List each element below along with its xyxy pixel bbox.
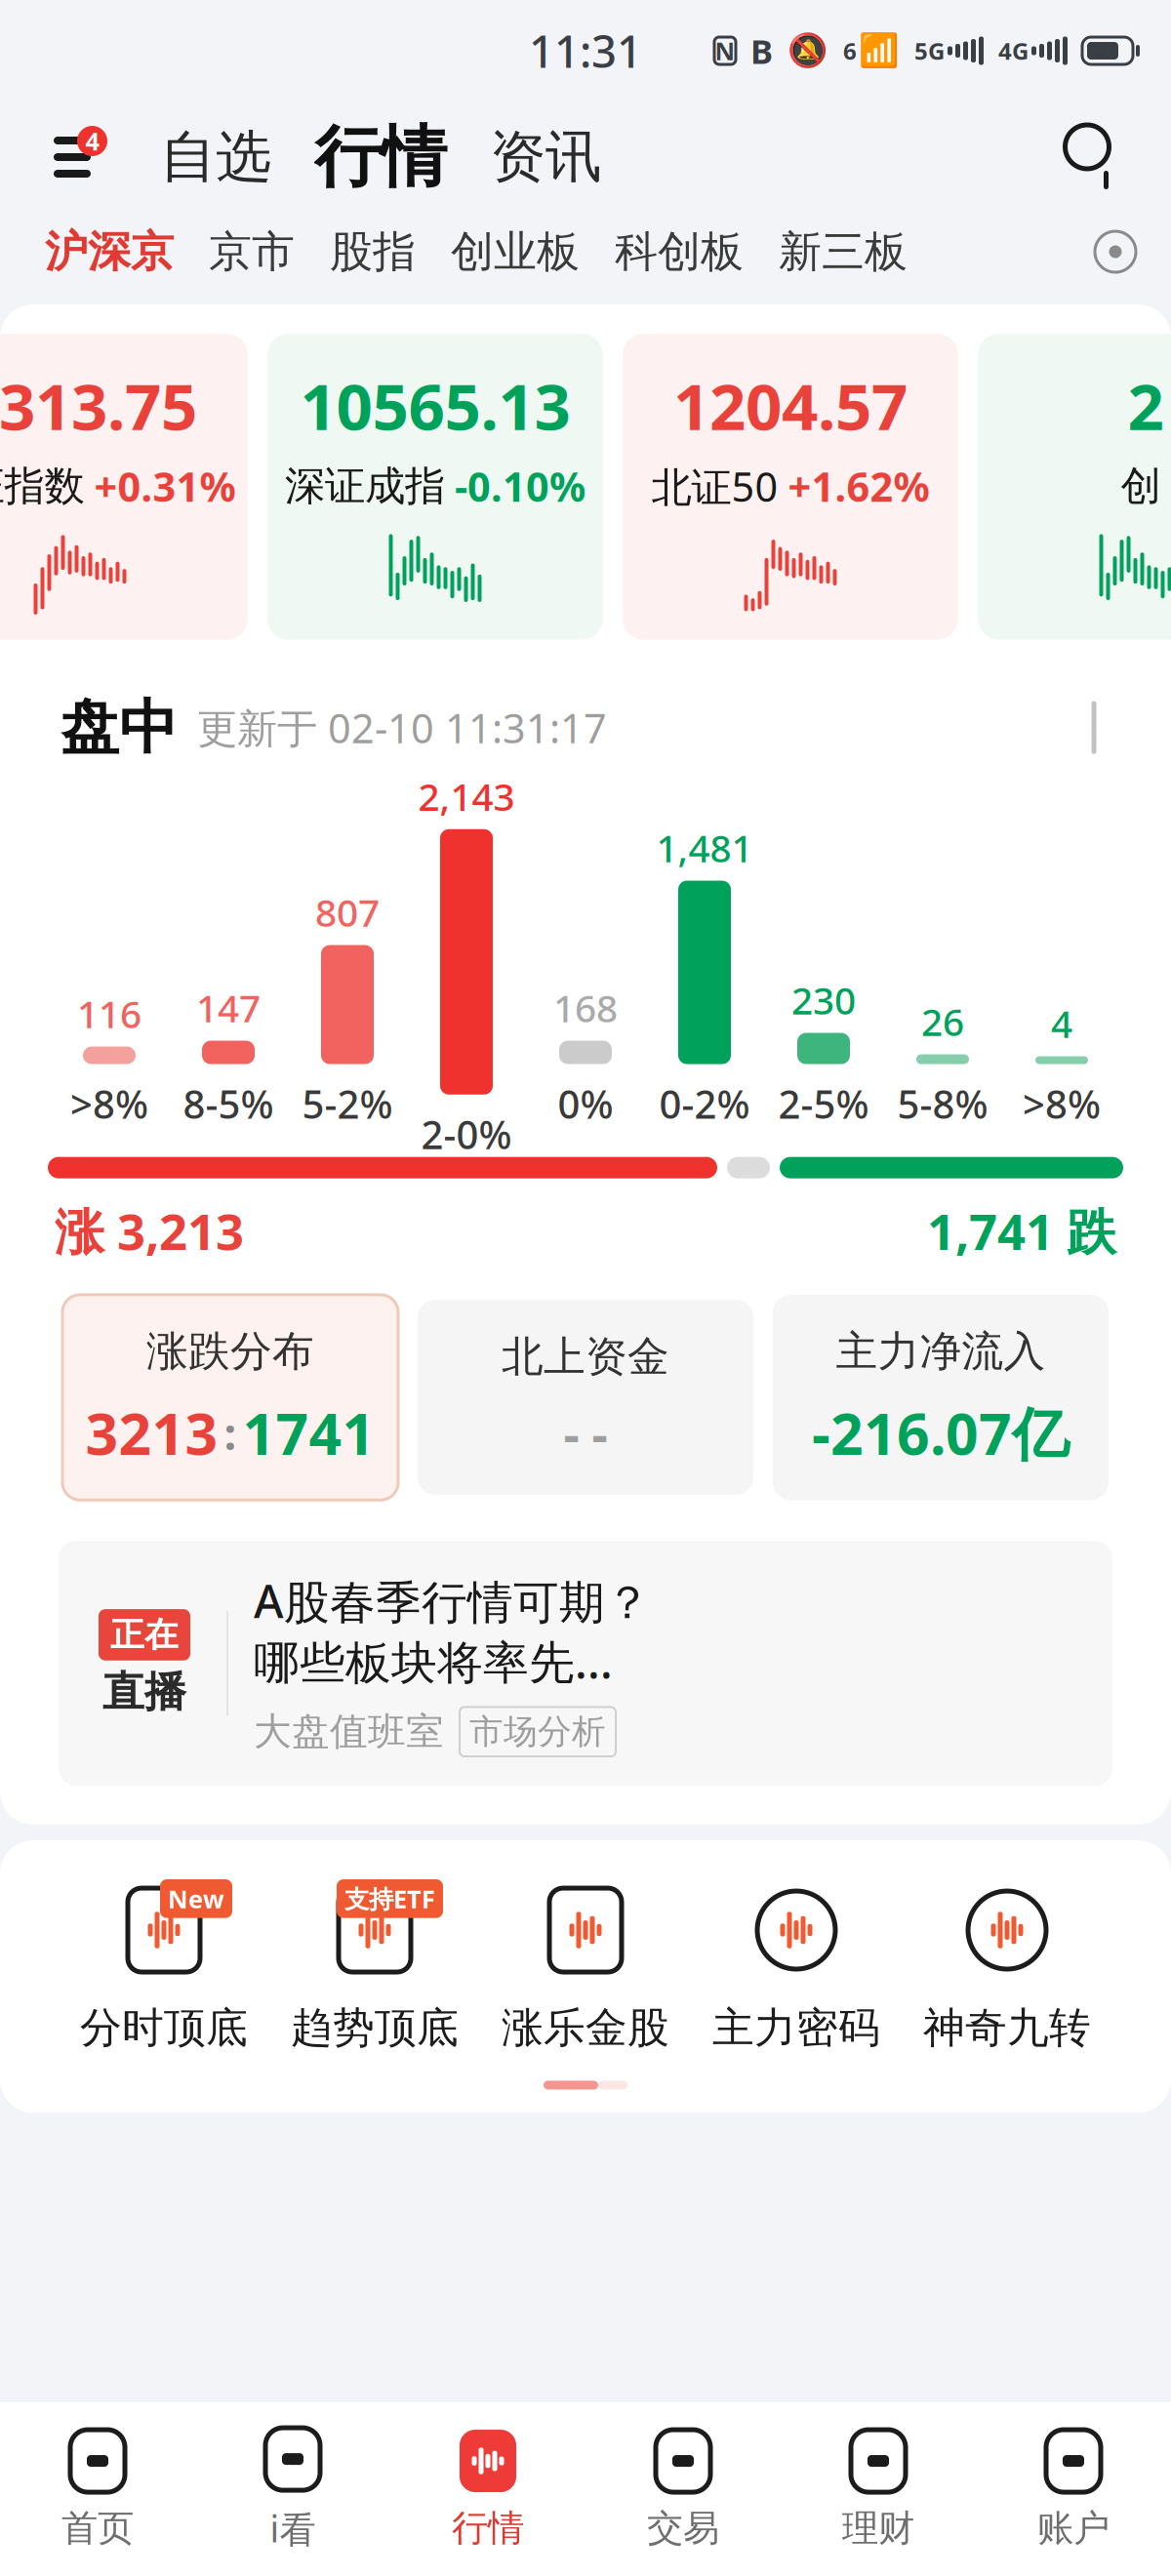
button[interactable]: 股指	[330, 225, 451, 278]
staticText: 807	[315, 887, 380, 937]
staticText: 交易	[647, 2506, 719, 2551]
button[interactable]: 支持ETF	[269, 1875, 480, 2053]
staticText: 4	[85, 125, 99, 157]
staticText: 京市	[209, 225, 295, 278]
staticText: A股春季行情可期？哪些板块将率先...	[254, 1570, 651, 1691]
staticText: 神奇九转	[923, 2002, 1091, 2053]
button[interactable]: i看	[195, 2424, 390, 2555]
staticText: >8%	[70, 1078, 148, 1130]
button[interactable]: 科创板	[615, 225, 779, 278]
button[interactable]: Edit categories	[1085, 221, 1146, 282]
button[interactable]: 沪深京	[45, 225, 209, 278]
staticText: 沪深京	[45, 225, 174, 278]
button[interactable]: 资讯	[482, 123, 609, 191]
button[interactable]: 创业板	[451, 225, 615, 278]
staticText: 147	[196, 983, 261, 1033]
staticText: 230	[791, 975, 856, 1025]
button[interactable]: 首页	[0, 2424, 195, 2555]
staticText: :	[224, 1403, 237, 1462]
staticText: 深证成指	[285, 461, 445, 511]
staticText: 116	[77, 989, 141, 1039]
button[interactable]: 账户	[976, 2424, 1171, 2555]
staticText: 行情	[452, 2506, 524, 2551]
staticText: 主力密码	[712, 2002, 880, 2053]
staticText: 🔕	[787, 32, 828, 69]
staticText: 5G	[914, 35, 945, 66]
staticText: 市场分析	[469, 1711, 606, 1752]
staticText: 新三板	[779, 225, 908, 278]
button[interactable]: 1204.57	[623, 334, 958, 640]
staticText: 涨乐金股	[502, 2002, 669, 2053]
staticText: 自选	[160, 123, 271, 191]
staticText: 趋势顶底	[291, 2002, 459, 2053]
staticText: 0%	[558, 1078, 613, 1130]
staticText: 股指	[330, 225, 416, 278]
staticText: 2-0%	[421, 1108, 512, 1160]
button[interactable]: 新三板	[779, 225, 943, 278]
button[interactable]: Search	[1052, 122, 1122, 192]
staticText: 直播	[102, 1666, 186, 1717]
staticText: +0.31%	[94, 459, 236, 513]
staticText: 1,741 跌	[927, 1198, 1116, 1264]
staticText: 盘中	[61, 692, 178, 764]
staticText: 5-2%	[302, 1078, 393, 1130]
staticText: New	[168, 1882, 224, 1915]
staticText: 3213	[85, 1395, 218, 1471]
staticText: 更新于 02-10 11:31:17	[197, 701, 607, 754]
staticText: 4G	[998, 35, 1029, 66]
staticText: 2	[1128, 363, 1164, 448]
staticText: 8-5%	[183, 1078, 274, 1130]
button[interactable]: 涨跌分布	[62, 1295, 398, 1500]
staticText: 理财	[842, 2506, 914, 2551]
staticText: 主力净流入	[836, 1326, 1046, 1377]
staticText: 创业板	[451, 225, 580, 278]
button[interactable]: 京市	[209, 225, 330, 278]
button[interactable]: 10565.13	[267, 334, 603, 640]
button[interactable]: 3313.75	[0, 334, 248, 640]
button[interactable]: 主力密码	[691, 1875, 902, 2053]
staticText: -0.10%	[455, 459, 585, 513]
button[interactable]: 2	[978, 334, 1171, 640]
staticText: 科创板	[615, 225, 744, 278]
staticText: 账户	[1037, 2506, 1110, 2551]
staticText: 26	[921, 996, 964, 1046]
button[interactable]: 盘中	[0, 679, 1171, 776]
staticText: +1.62%	[788, 459, 929, 513]
button[interactable]: 北上资金	[418, 1300, 753, 1495]
staticText: 上证指数	[0, 461, 84, 511]
staticText: 行情	[314, 116, 447, 198]
button[interactable]: 行情	[306, 116, 455, 198]
staticText: 4	[1051, 998, 1072, 1048]
staticText: 分时顶底	[80, 2002, 248, 2053]
button[interactable]: 主力净流入	[773, 1295, 1109, 1500]
staticText: 首页	[61, 2506, 134, 2551]
staticText: 0-2%	[659, 1078, 750, 1130]
button[interactable]: 交易	[585, 2424, 781, 2555]
staticText: 创	[1121, 461, 1161, 511]
button[interactable]: Menu	[35, 122, 109, 192]
staticText: 大盘值班室	[254, 1709, 444, 1755]
staticText: -216.07亿	[812, 1395, 1070, 1471]
button[interactable]: 行情	[390, 2424, 585, 2555]
staticText: 1204.57	[673, 363, 908, 448]
staticText: 北上资金	[502, 1331, 669, 1382]
staticText: 11:31	[529, 21, 642, 80]
button[interactable]: 神奇九转	[902, 1875, 1112, 2053]
staticText: 涨 3,213	[55, 1198, 244, 1264]
staticText: 1,481	[656, 823, 753, 873]
button[interactable]: 涨乐金股	[480, 1875, 691, 2053]
staticText: 10565.13	[300, 363, 570, 448]
staticText: 5-8%	[897, 1078, 988, 1130]
button[interactable]: 理财	[781, 2424, 976, 2555]
staticText: 6	[843, 35, 857, 66]
button[interactable]: 自选	[152, 123, 279, 191]
staticText: 2-5%	[778, 1078, 869, 1130]
staticText: 正在	[110, 1614, 179, 1656]
staticText: 📶	[859, 32, 900, 69]
staticText: i看	[270, 2504, 316, 2552]
button[interactable]: New	[59, 1875, 269, 2053]
button[interactable]: 正在	[59, 1541, 1112, 1786]
staticText: 3313.75	[0, 363, 197, 448]
staticText: - -	[564, 1400, 607, 1466]
staticText: 支持ETF	[344, 1882, 435, 1915]
